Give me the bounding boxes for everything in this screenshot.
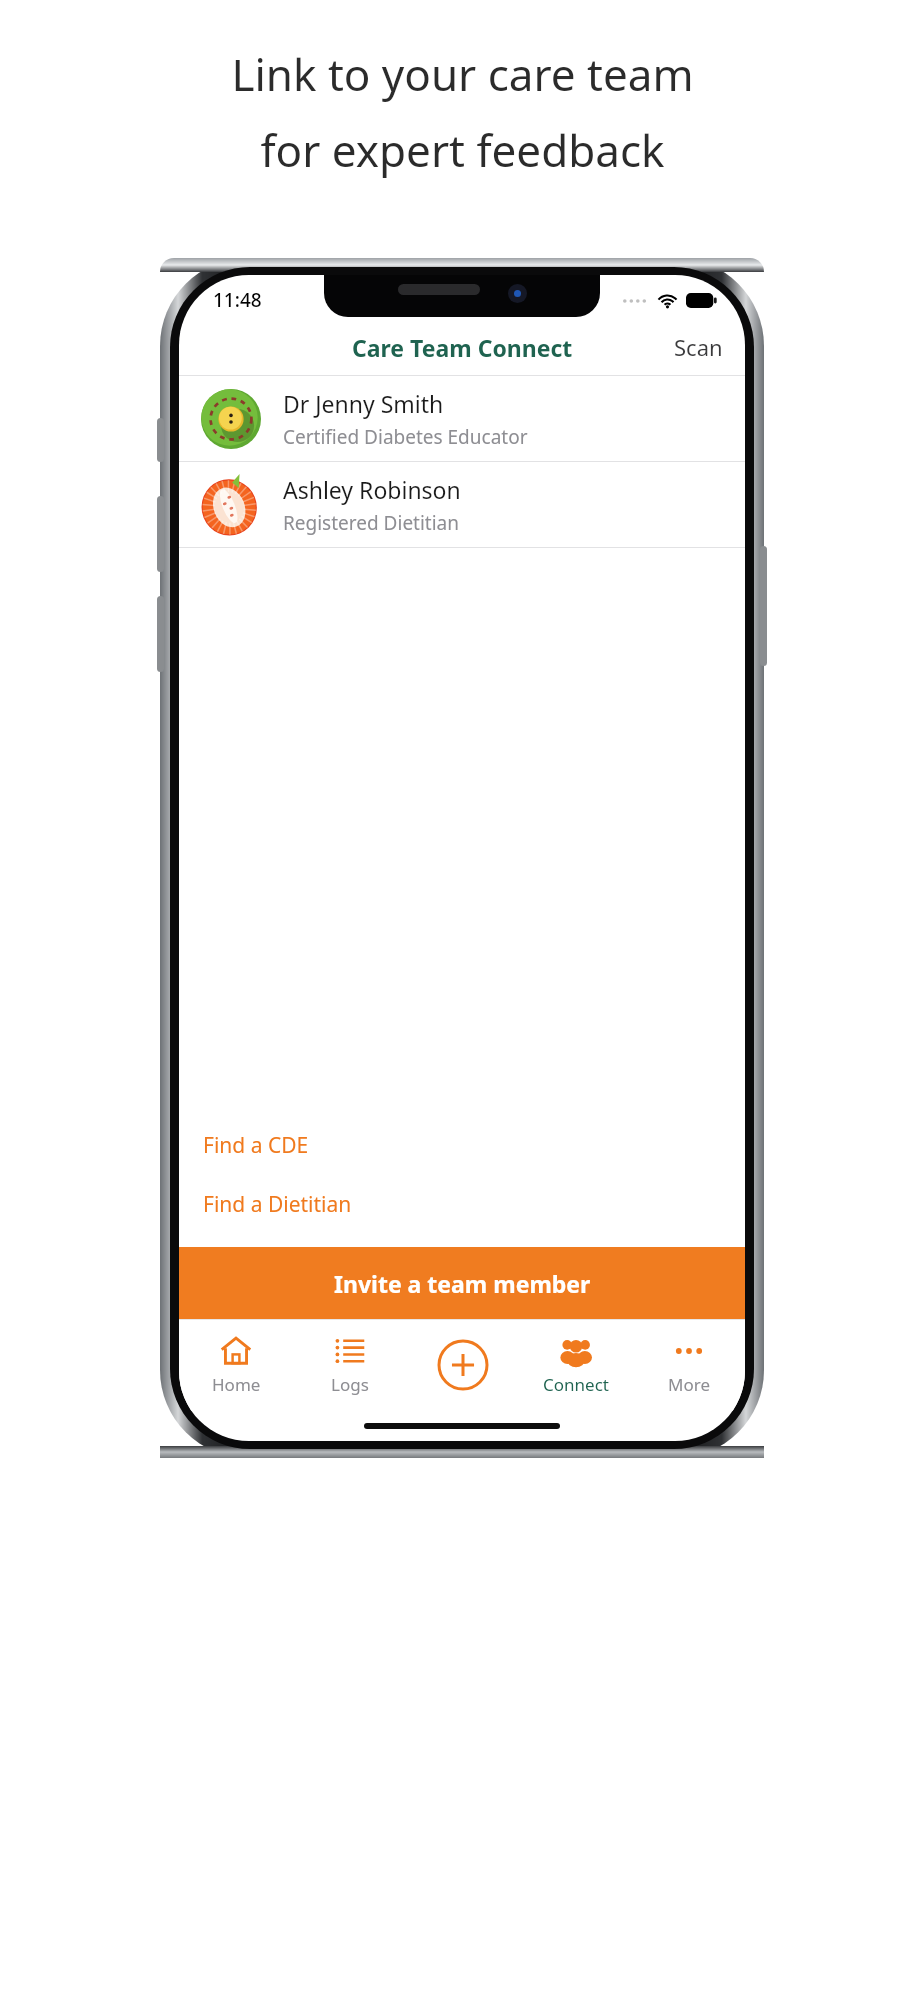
staticText: 11:48	[213, 287, 262, 313]
button[interactable]: Home	[179, 1319, 293, 1411]
button[interactable]: Ashley Robinson	[179, 462, 745, 547]
button[interactable]: Logs	[293, 1319, 406, 1411]
button[interactable]: Add entry	[406, 1319, 519, 1411]
button[interactable]: Find a Dietitian	[179, 1180, 745, 1229]
staticText: Invite a team member	[334, 1268, 591, 1299]
staticText: Scan	[674, 332, 723, 362]
staticText: Ashley Robinson	[283, 474, 461, 505]
button[interactable]: Scan	[652, 322, 745, 372]
staticText: Link to your care team	[231, 44, 694, 104]
staticText: Dr Jenny Smith	[283, 388, 444, 419]
staticText: Logs	[331, 1373, 369, 1396]
staticText: for expert feedback	[260, 120, 665, 180]
button[interactable]: Invite a team member	[179, 1247, 745, 1319]
staticText: Registered Dietitian	[283, 510, 460, 536]
staticText: Care Team Connect	[352, 332, 573, 363]
staticText: Find a CDE	[203, 1131, 309, 1160]
button[interactable]: Dr Jenny Smith	[179, 376, 745, 461]
staticText: Home	[212, 1373, 261, 1396]
staticText: Certified Diabetes Educator	[283, 424, 528, 450]
staticText: Find a Dietitian	[203, 1190, 352, 1219]
button[interactable]: Connect	[519, 1319, 632, 1411]
staticText: Connect	[543, 1373, 609, 1396]
button[interactable]: More	[632, 1319, 745, 1411]
button[interactable]: Find a CDE	[179, 1121, 745, 1170]
staticText: More	[668, 1373, 710, 1396]
